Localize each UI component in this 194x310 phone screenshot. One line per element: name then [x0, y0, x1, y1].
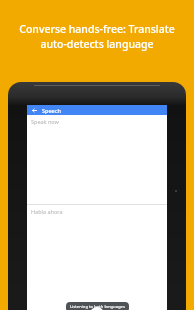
staticText: auto-detects language [40, 37, 154, 51]
staticText: Converse hands-free: Translate [19, 22, 175, 36]
staticText: Listening to both languages [70, 304, 125, 310]
staticText: Speech [42, 107, 61, 114]
button[interactable]: Microphone [90, 307, 104, 310]
staticText: Habla ahora [31, 208, 63, 215]
button[interactable]: Back [31, 107, 38, 114]
button[interactable]: Back [27, 105, 167, 115]
staticText: Speak now [31, 118, 59, 125]
button[interactable]: Habla ahora [27, 205, 167, 310]
